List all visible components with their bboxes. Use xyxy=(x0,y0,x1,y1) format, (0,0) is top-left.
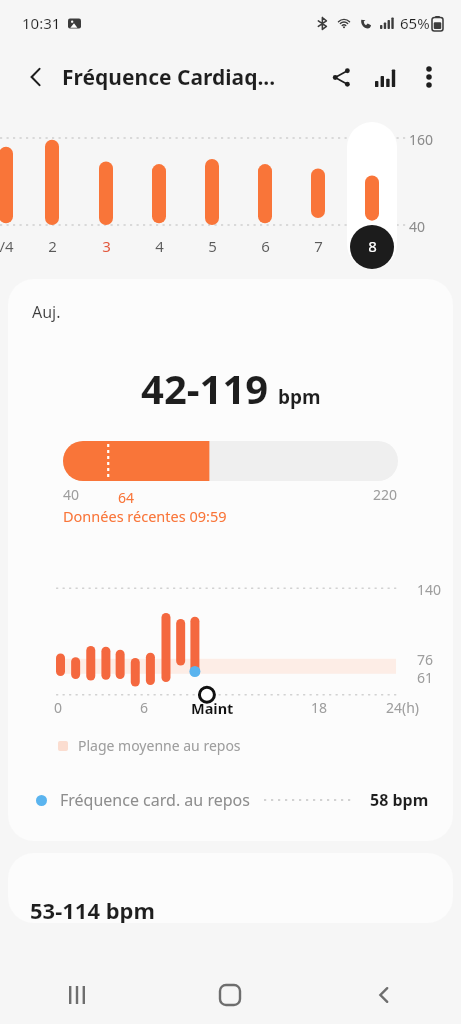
staticText: 65% xyxy=(400,13,430,33)
staticText: 58 bpm xyxy=(370,789,429,811)
staticText: 3 xyxy=(102,236,111,256)
staticText: 6 xyxy=(261,236,270,256)
button[interactable]: /4 xyxy=(0,236,26,266)
staticText: 64 xyxy=(118,488,135,507)
staticText: 40 xyxy=(63,485,80,504)
button[interactable]: Fréquence card. au repos xyxy=(8,785,453,815)
staticText: Maint xyxy=(191,698,234,718)
button[interactable]: 8 xyxy=(352,236,392,266)
staticText: 10:31 xyxy=(22,13,61,33)
staticText: 18 xyxy=(311,698,328,717)
staticText: 2 xyxy=(48,236,57,256)
button[interactable]: Recents xyxy=(0,966,153,1024)
staticText: 76 xyxy=(417,650,434,669)
button[interactable]: 3 xyxy=(86,236,126,266)
staticText: Fréquence card. au repos xyxy=(60,789,250,811)
button[interactable]: Back xyxy=(14,55,58,99)
button[interactable]: 53-114 bpm xyxy=(8,853,453,923)
staticText: 42-119 xyxy=(141,361,269,415)
button[interactable]: Home xyxy=(153,966,307,1024)
staticText: /4 xyxy=(0,236,14,256)
button[interactable]: Statistics xyxy=(363,55,407,99)
staticText: Auj. xyxy=(32,301,61,323)
staticText: 0 xyxy=(54,698,63,717)
button[interactable]: Auj. xyxy=(8,279,453,841)
staticText: 6 xyxy=(140,698,149,717)
staticText: Fréquence Cardiaq... xyxy=(62,63,276,92)
staticText: 40 xyxy=(409,217,426,236)
staticText: 140 xyxy=(417,580,442,599)
button[interactable]: 7 xyxy=(298,236,338,266)
staticText: 8 xyxy=(368,236,377,256)
button[interactable]: Back xyxy=(307,966,461,1024)
staticText: 53-114 bpm xyxy=(30,895,155,923)
staticText: 4 xyxy=(155,236,164,256)
button[interactable]: 2 xyxy=(32,236,72,266)
staticText: 61 xyxy=(417,668,434,687)
button[interactable]: Share xyxy=(319,55,363,99)
staticText: Plage moyenne au repos xyxy=(78,736,241,755)
staticText: 5 xyxy=(208,236,217,256)
staticText: Données récentes 09:59 xyxy=(63,506,227,526)
button[interactable]: 5 xyxy=(192,236,232,266)
staticText: bpm xyxy=(278,384,321,410)
button[interactable]: 4 xyxy=(139,236,179,266)
staticText: 24(h) xyxy=(386,698,420,717)
staticText: 220 xyxy=(373,485,398,504)
staticText: 7 xyxy=(314,236,323,256)
staticText: 160 xyxy=(409,130,434,149)
button[interactable]: 6 xyxy=(245,236,285,266)
button[interactable]: More options xyxy=(407,55,451,99)
